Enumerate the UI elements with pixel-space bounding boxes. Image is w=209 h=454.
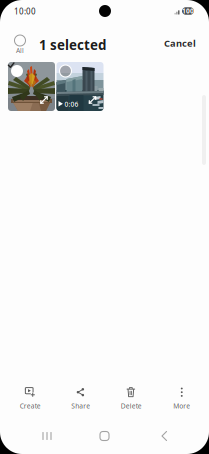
staticText: 1 selected bbox=[39, 36, 106, 54]
staticText: Create bbox=[20, 402, 41, 410]
button[interactable]: Cancel bbox=[157, 37, 203, 57]
staticText: Share bbox=[71, 402, 90, 410]
button[interactable]: More bbox=[156, 385, 207, 411]
staticText: All bbox=[16, 46, 24, 55]
button[interactable]: Recents bbox=[27, 426, 67, 446]
button[interactable]: Back bbox=[144, 426, 184, 446]
button[interactable]: Share bbox=[55, 385, 106, 411]
staticText: More bbox=[173, 402, 190, 410]
staticText: 100 bbox=[182, 7, 194, 15]
button[interactable]: Select all bbox=[8, 35, 32, 55]
button[interactable]: Home bbox=[87, 426, 121, 446]
button[interactable]: Video bbox=[56, 62, 103, 111]
staticText: Cancel bbox=[164, 37, 196, 49]
button[interactable]: Create bbox=[5, 385, 55, 411]
button[interactable]: Delete bbox=[106, 385, 156, 411]
staticText: 0:06 bbox=[64, 100, 78, 108]
button[interactable]: Photo bbox=[8, 62, 55, 111]
staticText: Delete bbox=[121, 402, 142, 410]
staticText: 10:00 bbox=[14, 6, 36, 17]
